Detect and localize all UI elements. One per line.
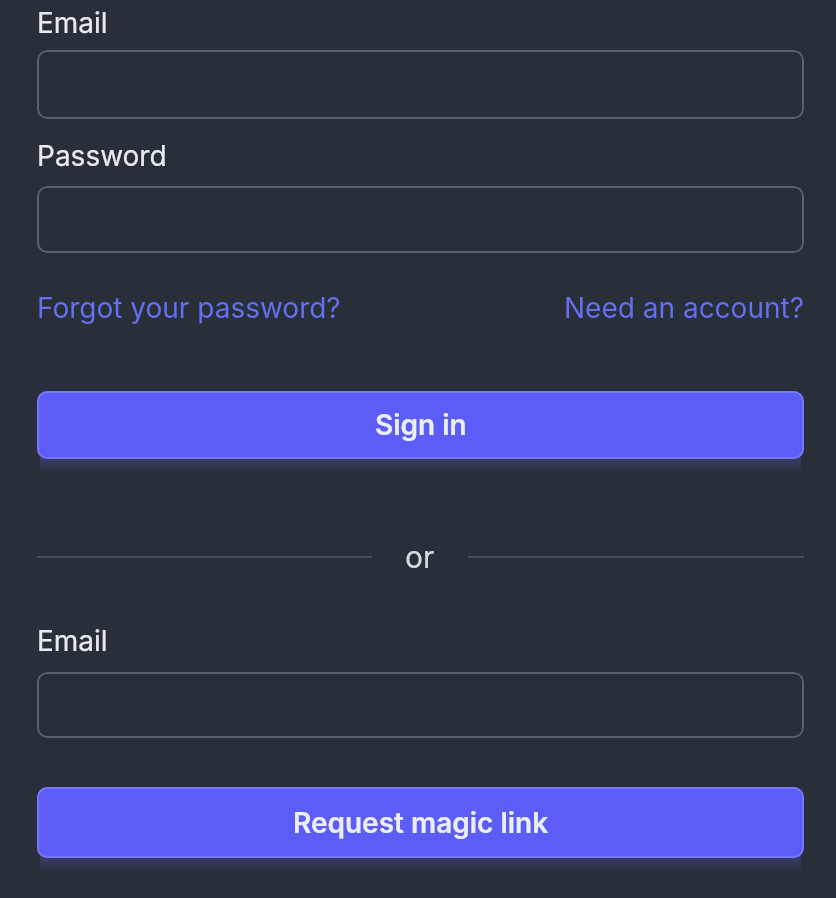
staticText: Email bbox=[37, 6, 108, 40]
staticText: Password bbox=[37, 139, 167, 173]
button[interactable] bbox=[37, 672, 804, 738]
staticText: Request magic link bbox=[293, 806, 549, 840]
button[interactable] bbox=[37, 186, 804, 253]
staticText: Email bbox=[37, 624, 108, 658]
staticText: Sign in bbox=[375, 408, 467, 442]
button[interactable]: Forgot your password? bbox=[37, 291, 341, 325]
button[interactable] bbox=[37, 50, 804, 119]
staticText: or bbox=[405, 539, 435, 575]
button[interactable]: Request magic link bbox=[37, 787, 804, 858]
button[interactable]: Need an account? bbox=[564, 291, 804, 325]
button[interactable]: Sign in bbox=[37, 391, 804, 459]
